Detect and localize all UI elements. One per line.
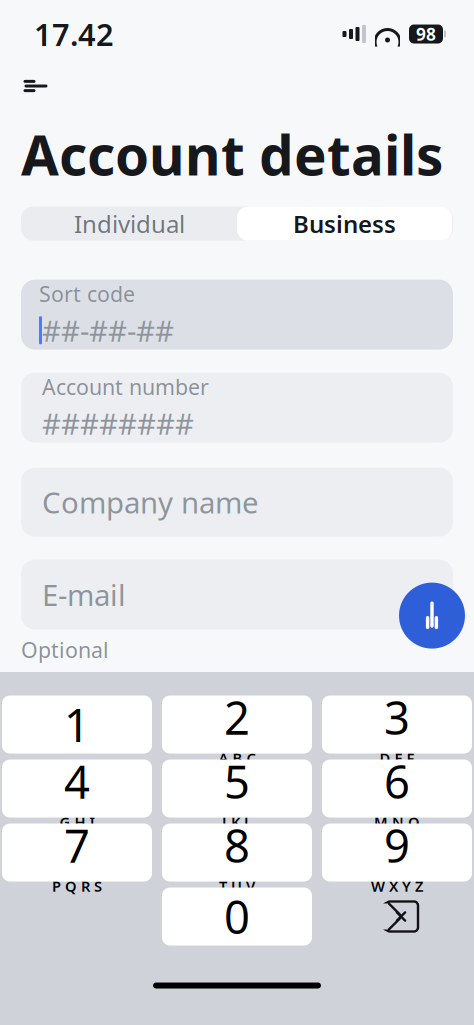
staticText: Sort code xyxy=(39,279,135,308)
button[interactable]: E-mail xyxy=(21,560,453,630)
staticText: T U V xyxy=(219,876,255,896)
staticText: J K L xyxy=(222,812,252,832)
staticText: Account number xyxy=(42,372,209,401)
staticText: Business xyxy=(293,208,396,240)
staticText: 6 xyxy=(384,751,410,811)
button[interactable]: 4 xyxy=(2,759,152,817)
staticText: M N O xyxy=(374,812,420,832)
button[interactable]: 6 xyxy=(322,759,472,817)
staticText: Optional xyxy=(21,636,109,664)
button[interactable]: 0 xyxy=(162,887,312,945)
staticText: 2 xyxy=(224,687,250,747)
staticText: 8 xyxy=(224,815,250,875)
staticText: Account details xyxy=(21,118,443,191)
button[interactable]: Back xyxy=(14,68,58,104)
staticText: 3 xyxy=(384,687,410,747)
staticText: E-mail xyxy=(42,575,126,614)
staticText: 98 xyxy=(416,22,436,45)
staticText: ##-##-## xyxy=(42,311,174,350)
button[interactable]: Delete xyxy=(322,887,472,945)
staticText: 4 xyxy=(64,751,90,811)
button[interactable]: 2 xyxy=(162,695,312,753)
button[interactable]: Company name xyxy=(21,468,453,537)
staticText: ######## xyxy=(42,404,194,443)
staticText: Individual xyxy=(74,208,185,240)
staticText: W X Y Z xyxy=(371,876,423,896)
button[interactable]: Sort code xyxy=(21,280,453,350)
staticText: 7 xyxy=(64,815,90,875)
staticText: Company name xyxy=(42,483,259,522)
button[interactable]: 1 xyxy=(2,695,152,753)
button[interactable]: 7 xyxy=(2,823,152,881)
button[interactable]: Account number xyxy=(21,373,453,443)
button[interactable]: Submit xyxy=(399,583,465,649)
button[interactable]: 8 xyxy=(162,823,312,881)
staticText: 17.42 xyxy=(34,14,114,54)
button[interactable]: 9 xyxy=(322,823,472,881)
staticText: A B C xyxy=(218,748,255,768)
button[interactable]: Individual xyxy=(22,207,237,241)
staticText: P Q R S xyxy=(52,876,102,896)
button[interactable]: Business xyxy=(237,207,452,241)
staticText: 0 xyxy=(224,886,250,947)
staticText: 5 xyxy=(224,751,250,811)
staticText: 9 xyxy=(384,815,410,875)
button[interactable]: 5 xyxy=(162,759,312,817)
staticText: G H I xyxy=(59,812,94,832)
staticText: 1 xyxy=(64,694,90,755)
button[interactable]: 3 xyxy=(322,695,472,753)
staticText: D E F xyxy=(379,748,414,768)
